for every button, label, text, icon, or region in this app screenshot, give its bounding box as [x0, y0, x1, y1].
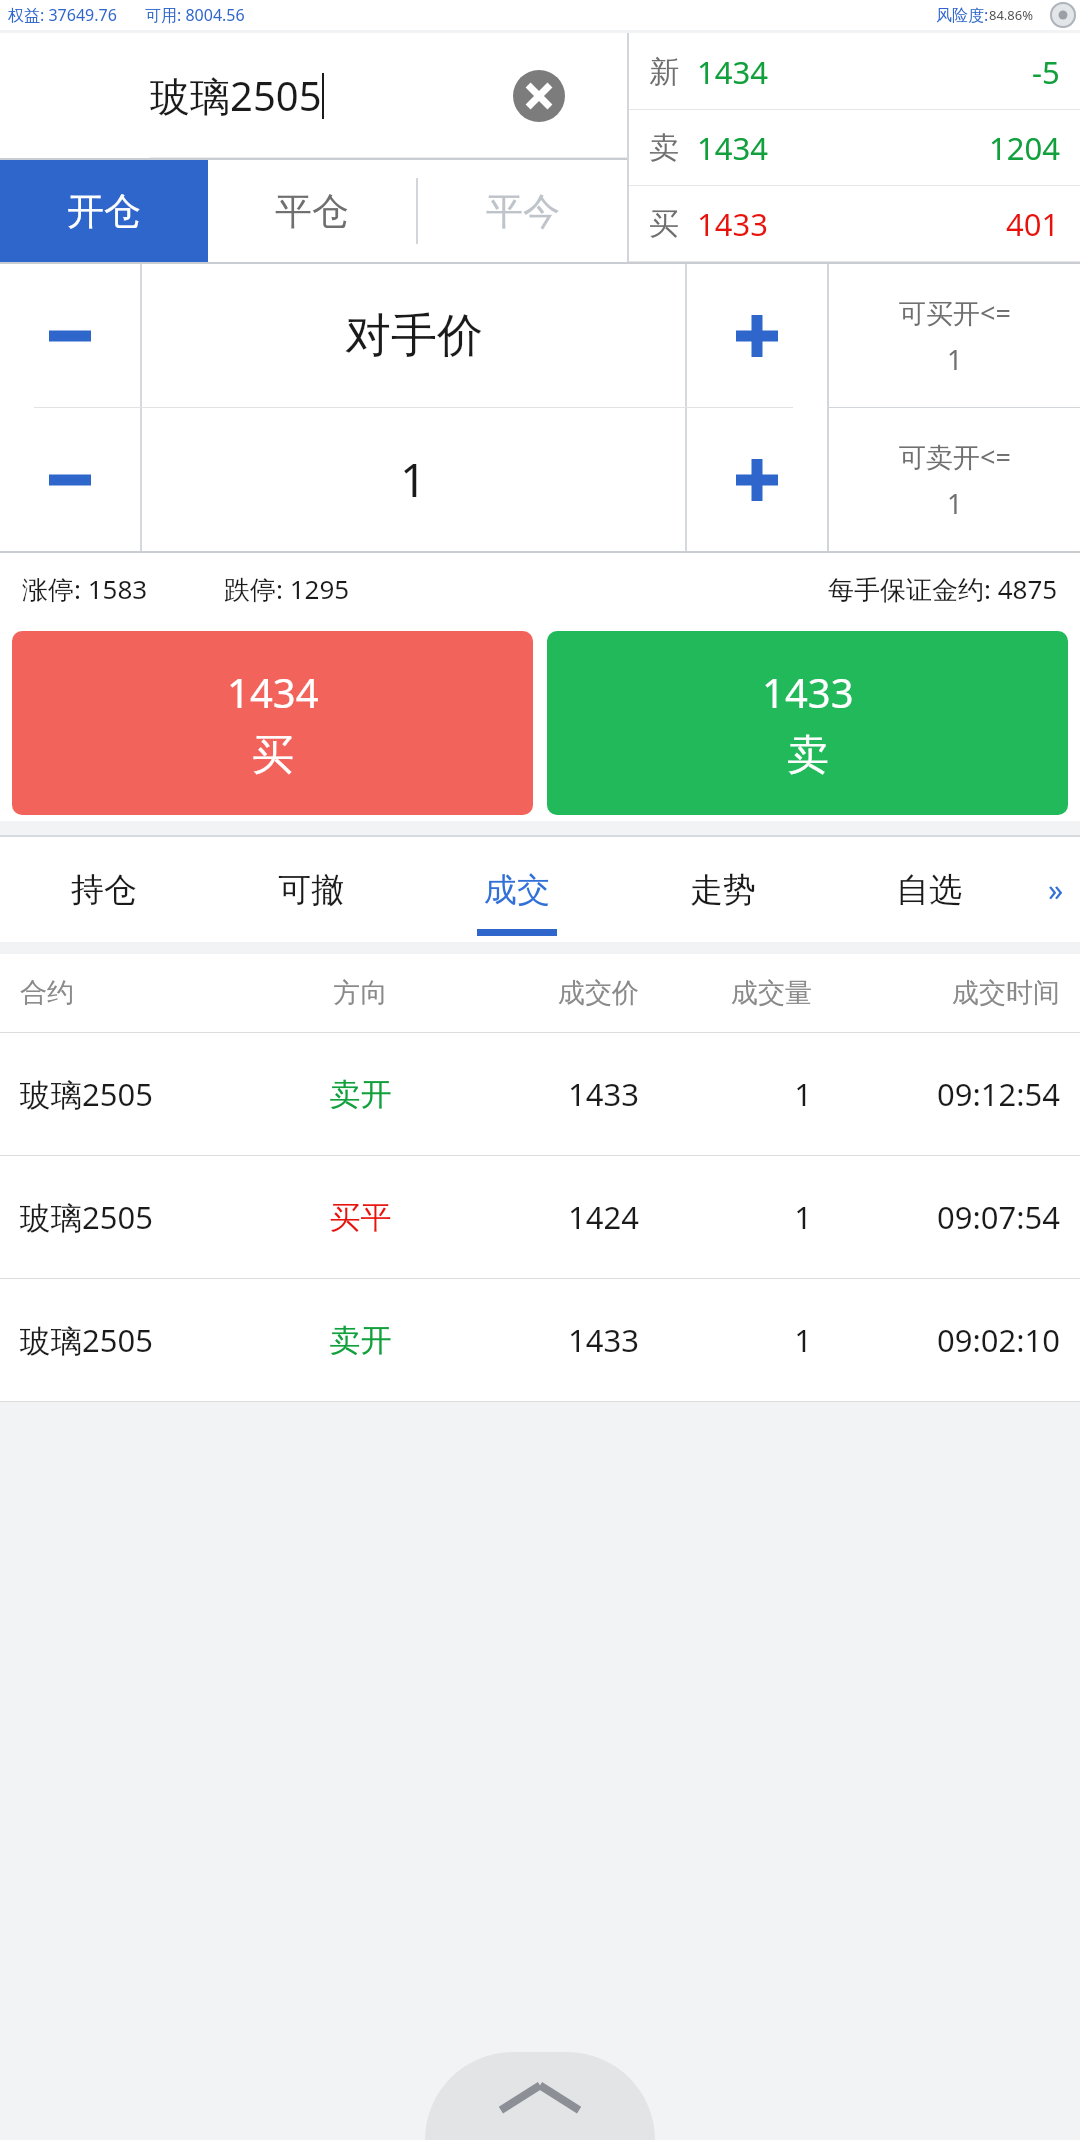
staticText: 1 [947, 485, 963, 522]
staticText: 1433 [441, 1319, 639, 1361]
staticText: 平今 [486, 188, 560, 235]
staticText: 1 [639, 1073, 812, 1115]
staticText: 1204 [989, 127, 1060, 169]
button[interactable]: 自选 [826, 837, 1032, 942]
button[interactable]: 平仓 [208, 160, 416, 262]
staticText: 平仓 [275, 188, 349, 235]
staticText: 玻璃2505 [150, 68, 322, 123]
staticText: 方向 [280, 976, 441, 1010]
staticText: 1434 [227, 665, 319, 719]
staticText: 卖开 [280, 1075, 441, 1114]
staticText: 买 [252, 729, 294, 782]
button[interactable]: 买 [629, 186, 1080, 262]
button[interactable]: 玻璃2505 [0, 1033, 1080, 1155]
staticText: -5 [1032, 51, 1060, 93]
button[interactable]: Decrease [0, 264, 140, 407]
staticText: 成交时间 [812, 976, 1060, 1010]
staticText: 1 [639, 1319, 812, 1361]
staticText: 1434 [697, 51, 768, 93]
button[interactable]: 开仓 [0, 160, 208, 262]
staticText: 09:02:10 [812, 1319, 1060, 1361]
button[interactable]: 走势 [620, 837, 826, 942]
staticText: 卖 [787, 729, 829, 782]
staticText: 风险度: [936, 4, 989, 26]
button[interactable]: Expand [425, 2052, 655, 2140]
staticText: » [1048, 869, 1064, 910]
staticText: 09:07:54 [812, 1196, 1060, 1238]
button[interactable]: 玻璃2505 [0, 1156, 1080, 1278]
staticText: 走势 [690, 869, 756, 911]
staticText: 成交 [484, 869, 550, 911]
staticText: 买平 [280, 1198, 441, 1237]
button[interactable]: 卖 [629, 110, 1080, 186]
staticText: 合约 [20, 976, 280, 1010]
staticText: 可撤 [278, 869, 344, 911]
staticText: 自选 [896, 869, 962, 911]
button[interactable]: 1434 [12, 631, 533, 815]
staticText: 09:12:54 [812, 1073, 1060, 1115]
button[interactable]: 可卖开<= [829, 408, 1080, 551]
button[interactable]: Account [1050, 2, 1076, 28]
staticText: 玻璃2505 [20, 1196, 280, 1238]
staticText: 可买开<= [899, 294, 1011, 331]
staticText: 新 [649, 53, 679, 91]
staticText: 1433 [697, 203, 768, 245]
staticText: 1 [639, 1196, 812, 1238]
button[interactable]: Decrease [0, 408, 140, 551]
staticText: 每手保证金约: 4875 [828, 571, 1058, 607]
staticText: 1433 [441, 1073, 639, 1115]
button[interactable]: 玻璃2505 [0, 33, 627, 158]
button[interactable]: Increase [687, 408, 827, 551]
button[interactable]: 1433 [547, 631, 1068, 815]
button[interactable]: 可买开<= [829, 264, 1080, 407]
button[interactable]: 持仓 [0, 837, 207, 942]
staticText: 成交价 [441, 976, 639, 1010]
staticText: 开仓 [67, 188, 141, 235]
staticText: 可卖开<= [899, 438, 1011, 475]
staticText: 卖开 [280, 1321, 441, 1360]
staticText: 跌停: 1295 [224, 571, 350, 607]
staticText: 1433 [762, 665, 854, 719]
button[interactable]: Increase [687, 264, 827, 407]
staticText: 1434 [697, 127, 768, 169]
staticText: 权益: 37649.76 [8, 4, 117, 26]
button[interactable]: 平今 [418, 160, 627, 262]
button[interactable]: More tabs [1032, 837, 1080, 942]
staticText: 1 [947, 341, 963, 378]
staticText: 401 [1006, 203, 1060, 245]
staticText: 1 [400, 448, 427, 511]
button[interactable]: 成交 [414, 837, 620, 942]
staticText: 玻璃2505 [20, 1073, 280, 1115]
staticText: 涨停: 1583 [22, 571, 148, 607]
staticText: 卖 [649, 129, 679, 167]
button[interactable]: Clear [513, 70, 565, 122]
staticText: 84.86% [989, 6, 1034, 24]
button[interactable]: 新 [629, 33, 1080, 110]
button[interactable]: 可撤 [207, 837, 414, 942]
button[interactable]: 玻璃2505 [0, 1279, 1080, 1401]
staticText: 1424 [441, 1196, 639, 1238]
staticText: 玻璃2505 [20, 1319, 280, 1361]
staticText: 可用: 8004.56 [145, 4, 245, 26]
staticText: 成交量 [639, 976, 812, 1010]
staticText: 对手价 [345, 307, 483, 365]
staticText: 持仓 [71, 869, 137, 911]
staticText: 买 [649, 205, 679, 243]
